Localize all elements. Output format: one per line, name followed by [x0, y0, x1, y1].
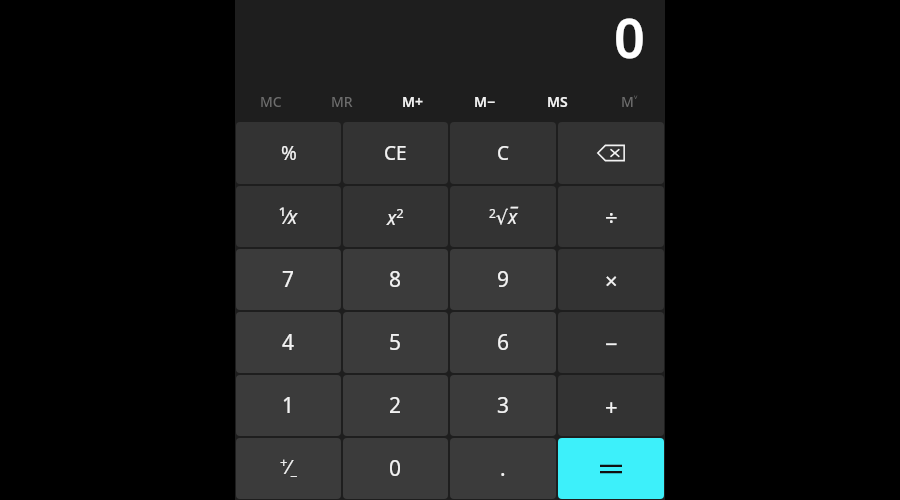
staticText: 9: [497, 265, 510, 294]
button[interactable]: MS: [521, 82, 593, 121]
button[interactable]: M+: [377, 82, 449, 121]
staticText: 3: [497, 391, 510, 420]
button[interactable]: +⁄−: [236, 438, 341, 499]
staticText: M˅: [621, 92, 638, 111]
staticText: 6: [497, 328, 510, 357]
button[interactable]: ×: [558, 249, 664, 310]
button[interactable]: C: [450, 122, 556, 184]
button[interactable]: Equals: [558, 438, 664, 499]
staticText: 1: [282, 391, 295, 420]
button[interactable]: 7: [236, 249, 341, 310]
button[interactable]: 4: [236, 312, 341, 373]
button[interactable]: M˅: [593, 82, 665, 121]
button[interactable]: Backspace: [558, 122, 664, 184]
button[interactable]: 1: [236, 375, 341, 436]
button[interactable]: 5: [343, 312, 448, 373]
button[interactable]: +: [558, 375, 664, 436]
button[interactable]: M−: [449, 82, 521, 121]
staticText: 7: [282, 265, 295, 294]
button[interactable]: x2: [343, 186, 448, 247]
staticText: C: [497, 140, 510, 166]
staticText: ×: [605, 265, 618, 295]
staticText: M−: [474, 92, 496, 111]
button[interactable]: 2√x̅: [450, 186, 556, 247]
staticText: +: [605, 391, 618, 421]
staticText: ¹⁄x: [279, 204, 298, 230]
staticText: 2√x̅: [489, 204, 518, 230]
staticText: 0: [389, 454, 402, 483]
staticText: ÷: [605, 202, 618, 232]
button[interactable]: 2: [343, 375, 448, 436]
staticText: M+: [402, 92, 424, 111]
button[interactable]: %: [236, 122, 341, 184]
staticText: 4: [282, 328, 295, 357]
staticText: 8: [389, 265, 402, 294]
button[interactable]: 6: [450, 312, 556, 373]
staticText: 0: [614, 0, 645, 74]
staticText: .: [500, 454, 506, 483]
button[interactable]: ¹⁄x: [236, 186, 341, 247]
staticText: 2: [389, 391, 402, 420]
staticText: 5: [389, 328, 402, 357]
button[interactable]: −: [558, 312, 664, 373]
staticText: MC: [260, 92, 282, 111]
button[interactable]: MR: [306, 82, 377, 121]
button[interactable]: CE: [343, 122, 448, 184]
button[interactable]: .: [450, 438, 556, 499]
button[interactable]: 9: [450, 249, 556, 310]
staticText: %: [281, 140, 297, 166]
staticText: MS: [547, 92, 568, 111]
staticText: CE: [384, 140, 407, 166]
staticText: −: [605, 328, 618, 358]
staticText: MR: [331, 92, 353, 111]
staticText: +⁄−: [280, 453, 298, 485]
button[interactable]: MC: [235, 82, 306, 121]
button[interactable]: ÷: [558, 186, 664, 247]
button[interactable]: 8: [343, 249, 448, 310]
staticText: x2: [387, 204, 404, 230]
button[interactable]: 0: [343, 438, 448, 499]
button[interactable]: 3: [450, 375, 556, 436]
